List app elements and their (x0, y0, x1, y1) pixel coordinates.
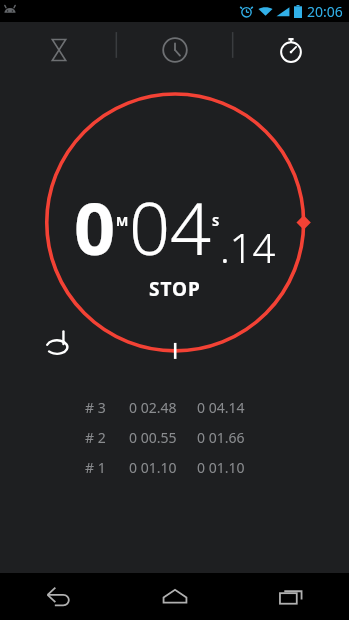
staticText: 0 04.14 (197, 398, 245, 417)
button[interactable]: # 1 (85, 458, 265, 477)
staticText: 0 01.66 (197, 428, 245, 447)
staticText: S (212, 212, 220, 230)
staticText: 0 01.10 (197, 458, 245, 477)
button[interactable]: Stopwatch (233, 22, 349, 78)
staticText: # 1 (85, 458, 129, 477)
button[interactable]: Clock (117, 22, 233, 78)
button[interactable]: # 2 (85, 428, 265, 447)
staticText: # 3 (85, 398, 129, 417)
button[interactable]: Home (117, 573, 233, 620)
button[interactable]: Lap (40, 328, 74, 362)
staticText: 0 00.55 (129, 428, 197, 447)
button[interactable]: STOP (133, 272, 217, 306)
staticText: 0 02.48 (129, 398, 197, 417)
button[interactable]: # 3 (85, 398, 265, 417)
staticText: 04 (129, 178, 212, 276)
button[interactable]: Timer (0, 22, 117, 78)
button[interactable]: 0 (0, 78, 349, 573)
staticText: 0 (74, 178, 116, 276)
staticText: .14 (220, 220, 276, 274)
staticText: M (116, 212, 129, 230)
staticText: 0 01.10 (129, 458, 197, 477)
staticText: STOP (149, 276, 201, 302)
button[interactable]: Recent apps (233, 573, 349, 620)
button[interactable]: Back (0, 573, 117, 620)
staticText: 20:06 (307, 2, 343, 21)
staticText: # 2 (85, 428, 129, 447)
